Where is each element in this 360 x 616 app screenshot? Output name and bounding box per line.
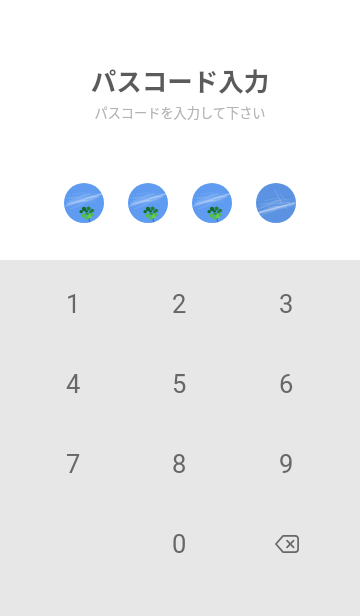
button[interactable]: 7: [20, 424, 126, 504]
staticText: 2: [172, 289, 187, 319]
button[interactable]: 3: [233, 264, 340, 344]
button[interactable]: 1: [20, 264, 126, 344]
button[interactable]: Empty digit: [256, 183, 296, 223]
button[interactable]: Backspace: [233, 504, 340, 584]
button[interactable]: 6: [233, 344, 340, 424]
staticText: パスコードを入力して下さい: [0, 103, 360, 122]
button[interactable]: 5: [126, 344, 233, 424]
button[interactable]: Entered digit: [128, 183, 168, 223]
staticText: 9: [279, 449, 294, 479]
staticText: パスコード入力: [0, 61, 360, 98]
button[interactable]: Entered digit: [64, 183, 104, 223]
staticText: 7: [66, 449, 81, 479]
button[interactable]: Entered digit: [192, 183, 232, 223]
staticText: 3: [279, 289, 294, 319]
staticText: 6: [279, 369, 294, 399]
staticText: 1: [66, 289, 81, 319]
button[interactable]: 0: [126, 504, 233, 584]
button[interactable]: 8: [126, 424, 233, 504]
staticText: 4: [66, 369, 81, 399]
staticText: 5: [172, 369, 187, 399]
button[interactable]: 2: [126, 264, 233, 344]
staticText: 8: [172, 449, 187, 479]
button[interactable]: 4: [20, 344, 126, 424]
other: Backspace: [275, 535, 299, 553]
button[interactable]: 9: [233, 424, 340, 504]
staticText: 0: [172, 529, 187, 559]
